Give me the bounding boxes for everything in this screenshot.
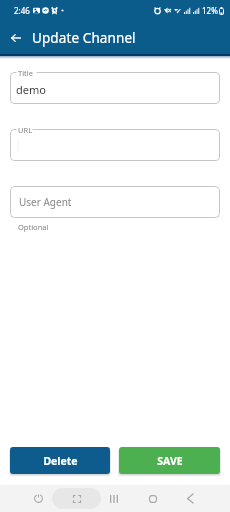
button[interactable]: Back bbox=[178, 485, 202, 512]
button[interactable]: Delete bbox=[10, 447, 110, 474]
staticText: 2:46 bbox=[14, 5, 30, 16]
button[interactable]: Power bbox=[26, 485, 50, 512]
button[interactable] bbox=[10, 129, 220, 161]
staticText: User Agent bbox=[19, 195, 72, 209]
staticText: Title bbox=[18, 68, 33, 78]
staticText: 12% bbox=[202, 5, 218, 16]
staticText: Update Channel bbox=[32, 29, 136, 47]
staticText: SAVE bbox=[157, 454, 183, 468]
button[interactable]: Home bbox=[140, 485, 165, 512]
staticText: URL bbox=[18, 125, 33, 135]
button[interactable]: Full screen bbox=[52, 488, 101, 509]
button[interactable]: demo bbox=[10, 72, 220, 104]
staticText: Optional bbox=[18, 222, 49, 232]
button[interactable]: SAVE bbox=[119, 447, 220, 474]
staticText: Delete bbox=[43, 454, 78, 468]
button[interactable]: Recent apps bbox=[102, 485, 126, 512]
staticText: demo bbox=[16, 82, 46, 97]
button[interactable]: User Agent bbox=[10, 186, 220, 218]
button[interactable]: Back bbox=[0, 20, 32, 55]
